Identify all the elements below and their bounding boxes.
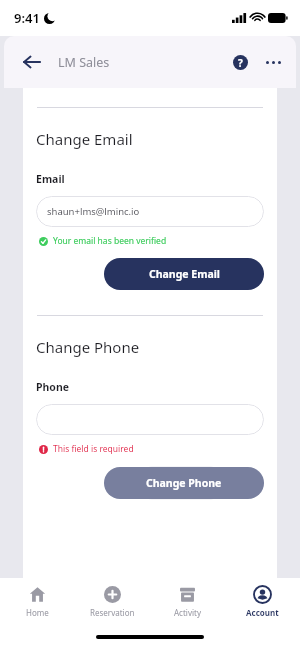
- button[interactable]: Help: [224, 46, 256, 78]
- staticText: Change Phone: [146, 476, 222, 490]
- staticText: Account: [246, 607, 279, 618]
- staticText: Phone: [36, 380, 70, 394]
- button[interactable]: Home: [0, 578, 75, 626]
- staticText: 9:41: [14, 9, 40, 27]
- staticText: Change Email: [149, 267, 220, 281]
- staticText: Email: [36, 172, 65, 186]
- button[interactable]: shaun+lms@lminc.io: [36, 196, 264, 227]
- button[interactable]: [36, 404, 264, 435]
- staticText: LM Sales: [58, 54, 110, 71]
- staticText: Change Phone: [36, 337, 140, 357]
- button[interactable]: More options: [256, 45, 290, 79]
- staticText: ?: [238, 56, 243, 70]
- staticText: Change Email: [36, 129, 133, 149]
- staticText: This field is required: [53, 443, 134, 455]
- staticText: Reservation: [90, 607, 135, 618]
- button[interactable]: Activity: [150, 578, 225, 626]
- button[interactable]: Change Phone: [104, 467, 264, 499]
- staticText: Your email has been verified: [53, 235, 167, 247]
- button[interactable]: Back: [14, 44, 50, 80]
- button[interactable]: Reservation: [75, 578, 150, 626]
- button[interactable]: Change Email: [104, 258, 264, 290]
- staticText: Home: [26, 607, 49, 618]
- button[interactable]: Account: [225, 578, 300, 626]
- staticText: Activity: [174, 607, 201, 618]
- staticText: shaun+lms@lminc.io: [47, 205, 140, 218]
